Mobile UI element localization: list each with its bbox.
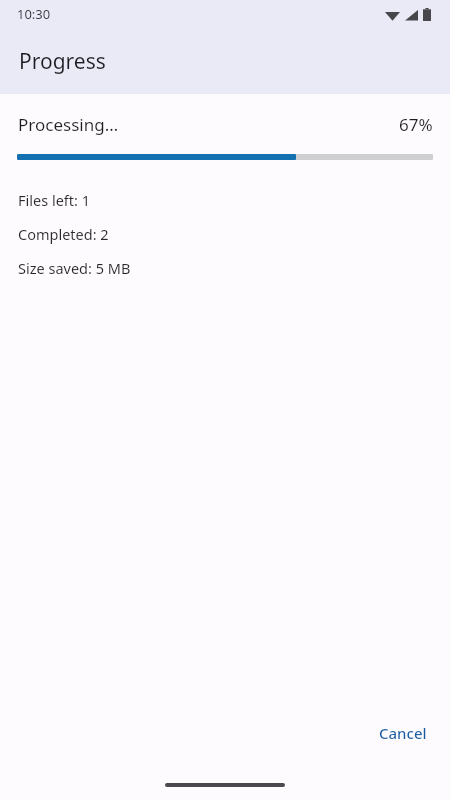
staticText: Progress (19, 47, 106, 76)
staticText: Size saved: 5 MB (18, 258, 131, 278)
staticText: 67% (399, 113, 433, 136)
other: Battery (423, 8, 431, 21)
other: Wi-Fi (385, 9, 400, 21)
staticText: Completed: 2 (18, 224, 109, 244)
other: Mobile signal (405, 9, 418, 21)
button[interactable]: Cancel (367, 714, 439, 752)
staticText: Cancel (379, 723, 427, 743)
staticText: Processing… (18, 113, 119, 136)
staticText: Files left: 1 (18, 190, 90, 210)
staticText: 10:30 (17, 5, 51, 23)
